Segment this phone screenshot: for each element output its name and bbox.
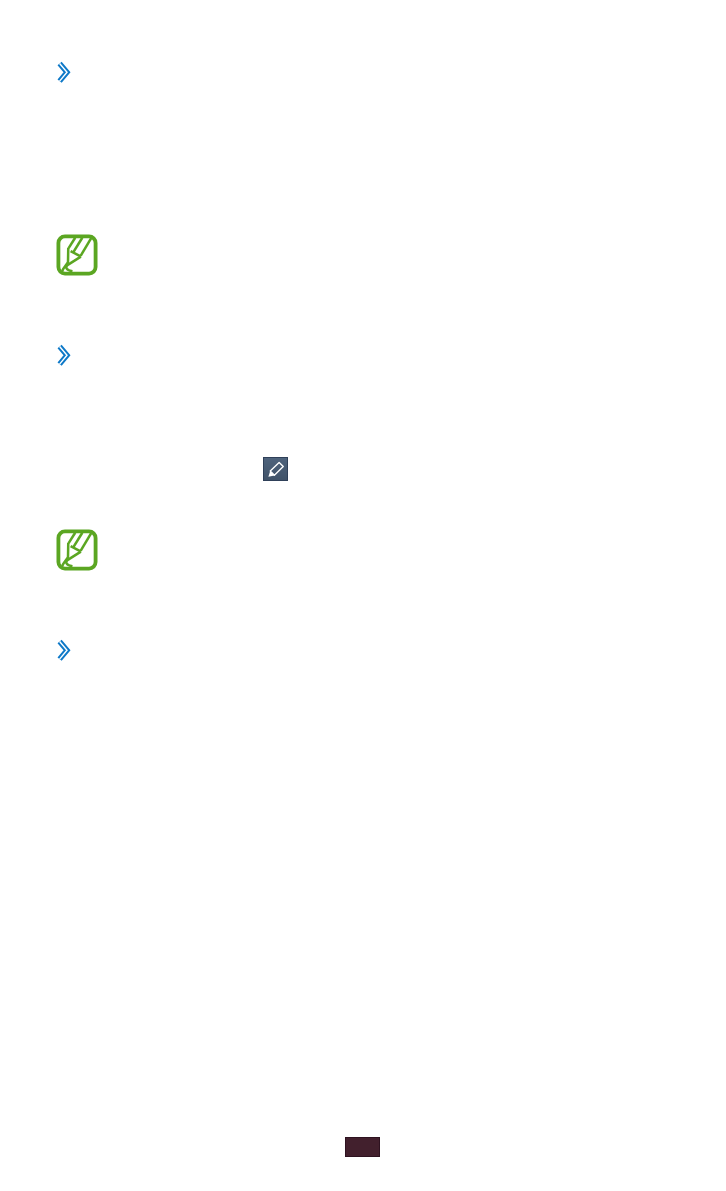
button[interactable]: S Pen (56, 234, 98, 276)
button[interactable]: Next step (57, 344, 71, 366)
button[interactable]: Edit note (263, 457, 288, 481)
button[interactable]: Next step (57, 61, 71, 83)
button[interactable]: Next step (57, 639, 71, 661)
button[interactable]: S Pen (56, 529, 98, 571)
